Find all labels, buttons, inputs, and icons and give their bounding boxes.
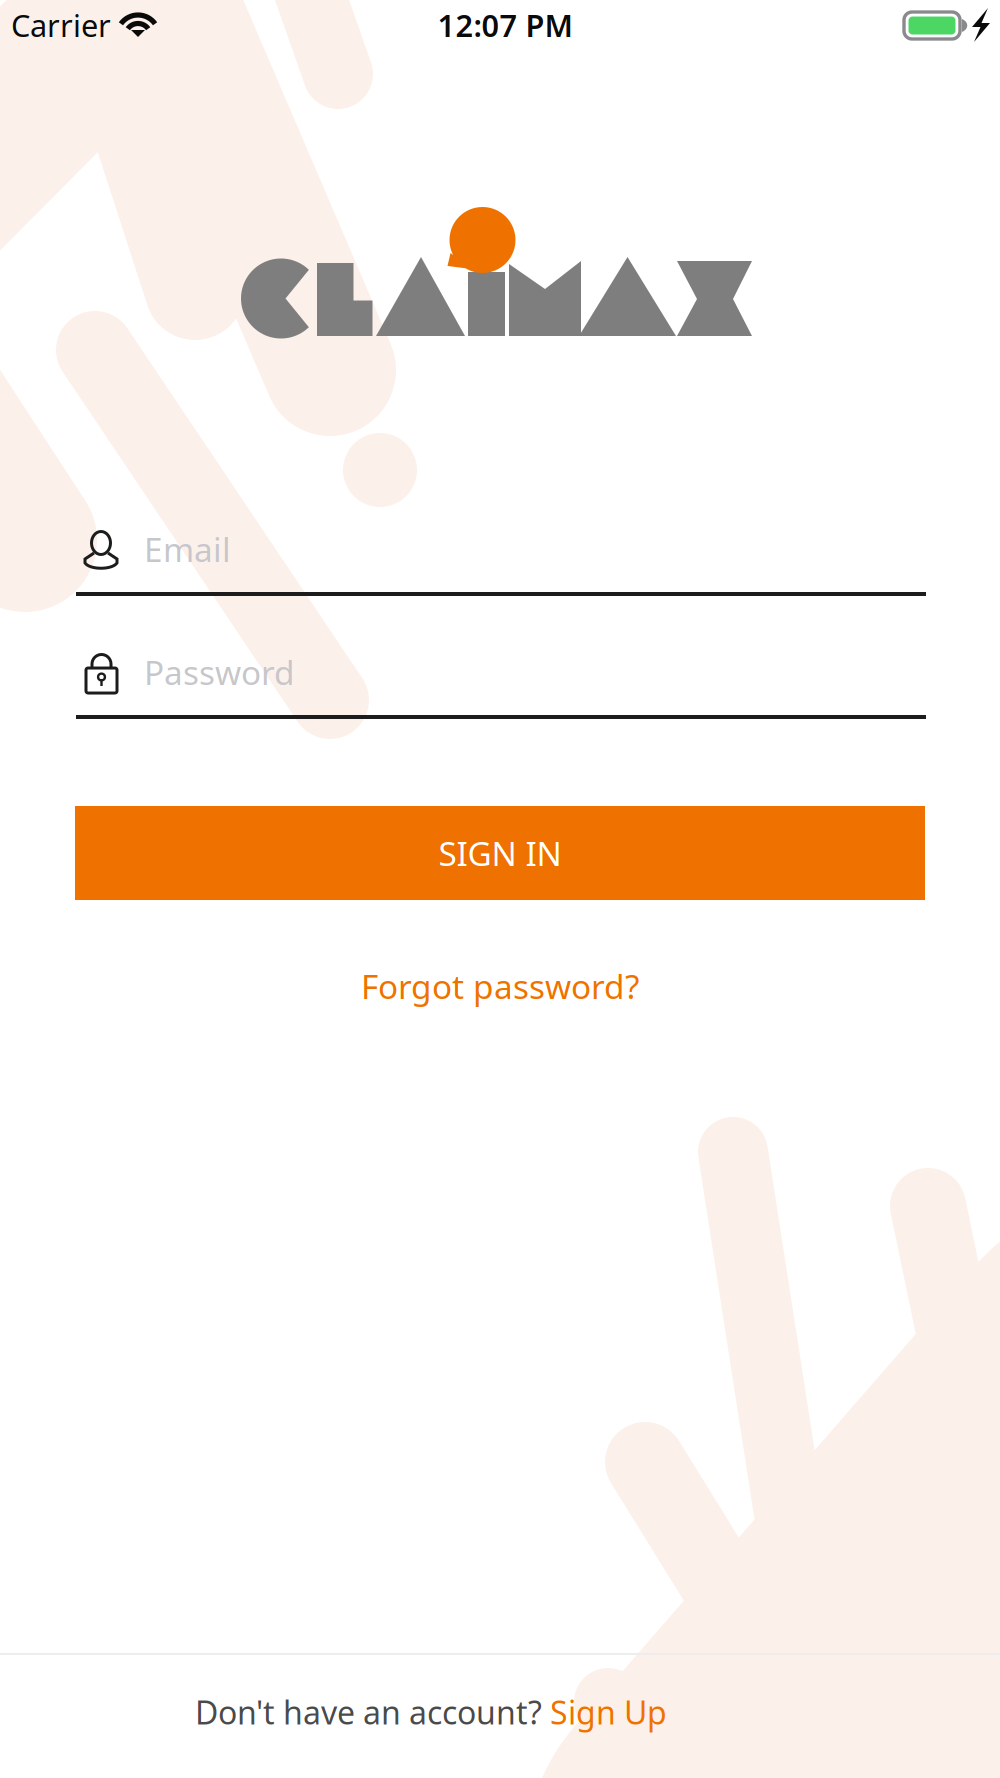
staticText: Password xyxy=(144,650,295,694)
button[interactable]: Password xyxy=(76,629,926,715)
button[interactable]: Email xyxy=(76,506,926,592)
button[interactable]: Don't have an account? xyxy=(0,1652,931,1772)
staticText: Sign Up xyxy=(550,1691,667,1733)
button[interactable]: Forgot password? xyxy=(340,955,660,1017)
button[interactable]: SIGN IN xyxy=(75,806,925,900)
staticText: Email xyxy=(144,527,231,571)
staticText: 12:07 PM xyxy=(437,5,572,45)
staticText: Carrier xyxy=(11,5,111,45)
staticText: Don't have an account? xyxy=(195,1691,550,1733)
staticText: SIGN IN xyxy=(438,831,561,875)
staticText: Forgot password? xyxy=(361,964,639,1008)
